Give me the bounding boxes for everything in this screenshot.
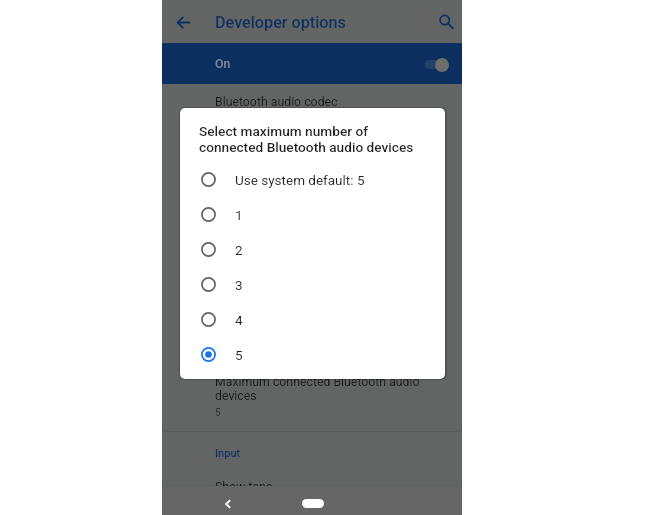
staticText: Select maximum number of connected Bluet… [199, 123, 414, 156]
staticText: 2 [235, 242, 243, 258]
staticText: Developer options [215, 13, 346, 32]
staticText: 5 [215, 407, 221, 419]
staticText: 3 [235, 277, 243, 293]
staticText: Maximum connected Bluetooth audio device… [215, 375, 420, 403]
button[interactable]: 5 [180, 337, 445, 372]
button[interactable]: Use system default: 5 [180, 162, 445, 197]
button[interactable]: Bluetooth audio codec [162, 84, 462, 114]
staticText: Bluetooth audio codec [215, 95, 338, 109]
staticText: 4 [235, 312, 243, 328]
button[interactable]: Input [162, 438, 462, 468]
button[interactable]: Back [213, 489, 243, 515]
button[interactable]: 2 [180, 232, 445, 267]
staticText: 5 [235, 347, 243, 363]
staticText: On [215, 56, 231, 71]
staticText: 1 [235, 207, 243, 223]
staticText: Use system default: 5 [235, 172, 365, 188]
button[interactable]: Show taps [162, 470, 462, 485]
button[interactable]: Home [302, 499, 324, 508]
button[interactable]: Back [168, 7, 198, 37]
button[interactable]: Maximum connected Bluetooth audio device… [162, 368, 462, 430]
staticText: Input [215, 447, 241, 460]
button[interactable]: On [162, 43, 462, 84]
button[interactable]: Search [431, 7, 461, 37]
button[interactable]: 4 [180, 302, 445, 337]
button[interactable]: 3 [180, 267, 445, 302]
button[interactable]: 1 [180, 197, 445, 232]
staticText: Show taps [215, 480, 273, 494]
